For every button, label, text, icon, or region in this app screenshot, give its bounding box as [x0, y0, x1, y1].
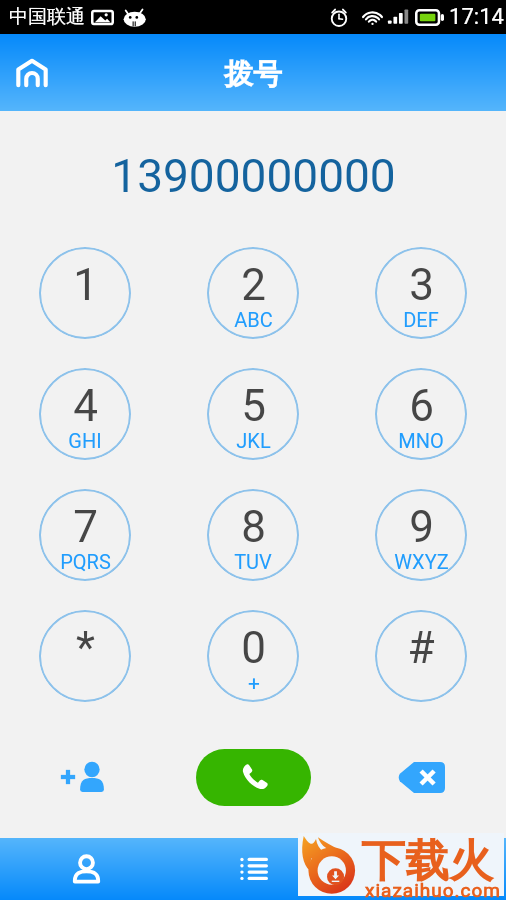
- button[interactable]: 6: [375, 368, 467, 460]
- button[interactable]: Contacts: [52, 838, 120, 900]
- staticText: MNO: [398, 429, 444, 452]
- button[interactable]: 7: [39, 489, 131, 581]
- button[interactable]: #: [375, 610, 467, 702]
- staticText: 9: [409, 501, 434, 553]
- button[interactable]: 9: [375, 489, 467, 581]
- staticText: 13900000000: [111, 149, 396, 203]
- staticText: 4: [73, 380, 98, 432]
- staticText: JKL: [236, 429, 271, 452]
- staticText: DEF: [403, 308, 439, 331]
- staticText: 2: [241, 259, 266, 311]
- button[interactable]: 5: [207, 368, 299, 460]
- staticText: xiazaihuo.com: [365, 879, 501, 900]
- staticText: 1: [73, 259, 98, 311]
- staticText: 中国联通: [9, 5, 85, 29]
- button[interactable]: Call log: [220, 838, 288, 900]
- staticText: 6: [409, 380, 434, 432]
- button[interactable]: *: [39, 610, 131, 702]
- staticText: 0: [241, 622, 266, 674]
- staticText: TUV: [234, 550, 272, 573]
- staticText: 5: [241, 380, 266, 432]
- button[interactable]: Add contact: [50, 742, 120, 812]
- staticText: 下载火: [361, 834, 493, 889]
- button[interactable]: 4: [39, 368, 131, 460]
- button[interactable]: 0: [207, 610, 299, 702]
- staticText: +: [248, 671, 260, 696]
- staticText: 8: [241, 501, 266, 553]
- button[interactable]: 8: [207, 489, 299, 581]
- staticText: *: [76, 622, 95, 674]
- button[interactable]: More: [388, 838, 456, 900]
- staticText: #: [407, 622, 435, 674]
- staticText: WXYZ: [394, 550, 449, 573]
- button[interactable]: Call: [196, 749, 311, 806]
- staticText: GHI: [68, 429, 102, 452]
- staticText: ABC: [234, 308, 273, 331]
- button[interactable]: 2: [207, 247, 299, 339]
- staticText: 17:14: [449, 4, 504, 30]
- staticText: 拨号: [224, 56, 282, 93]
- button[interactable]: Delete: [386, 742, 456, 812]
- button[interactable]: 3: [375, 247, 467, 339]
- button[interactable]: Home: [6, 47, 58, 99]
- button[interactable]: 1: [39, 247, 131, 339]
- staticText: 7: [73, 501, 98, 553]
- staticText: PQRS: [60, 550, 111, 573]
- staticText: 3: [409, 259, 434, 311]
